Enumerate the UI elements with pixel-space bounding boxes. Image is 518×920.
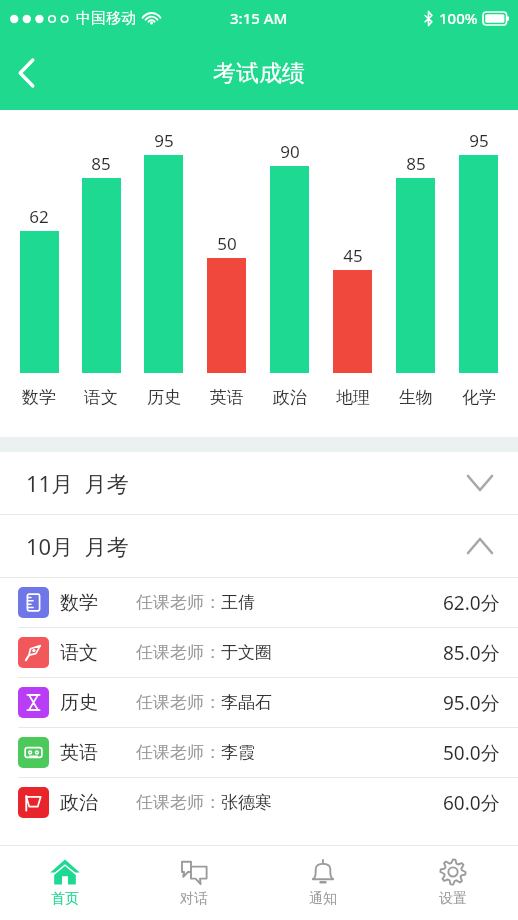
button[interactable]: 数学 (0, 578, 518, 627)
staticText: 95.0分 (443, 690, 500, 716)
staticText: 首页 (51, 890, 79, 908)
staticText: 95 (469, 129, 489, 152)
staticText: 95 (154, 129, 174, 152)
button[interactable]: 语文 (0, 628, 518, 677)
staticText: 数学 (60, 591, 98, 615)
staticText: 任课老师： (136, 592, 221, 613)
staticText: 英语 (60, 741, 98, 765)
button[interactable]: Back (0, 47, 52, 99)
staticText: 62 (29, 205, 49, 228)
staticText: 王倩 (221, 592, 255, 613)
staticText: 数学 (22, 387, 56, 408)
button[interactable]: 政治 (0, 778, 518, 827)
staticText: 任课老师： (136, 642, 221, 663)
staticText: 政治 (60, 791, 98, 815)
staticText: 45 (343, 244, 363, 267)
staticText: 100% (439, 8, 478, 28)
button[interactable]: 首页 (0, 845, 129, 920)
button[interactable]: 英语 (0, 728, 518, 777)
staticText: 化学 (462, 387, 496, 408)
button[interactable]: 通知 (258, 845, 388, 920)
staticText: 85.0分 (443, 640, 500, 666)
staticText: 设置 (439, 890, 467, 908)
staticText: 85 (406, 152, 426, 175)
staticText: 60.0分 (443, 790, 500, 816)
staticText: 李霞 (221, 742, 255, 763)
staticText: 11月 月考 (26, 468, 129, 498)
staticText: 李晶石 (221, 692, 272, 713)
button[interactable]: 11月 月考 (0, 452, 518, 514)
button[interactable]: 历史 (0, 678, 518, 727)
staticText: 考试成绩 (213, 59, 305, 88)
staticText: 对话 (180, 890, 208, 908)
staticText: 历史 (147, 387, 181, 408)
staticText: 通知 (309, 890, 337, 908)
staticText: 90 (280, 140, 300, 163)
staticText: 历史 (60, 691, 98, 715)
staticText: 政治 (273, 387, 307, 408)
staticText: 85 (91, 152, 111, 175)
staticText: 张德寒 (221, 792, 272, 813)
staticText: 地理 (336, 387, 370, 408)
staticText: 英语 (210, 387, 244, 408)
staticText: 任课老师： (136, 792, 221, 813)
button[interactable]: 设置 (388, 845, 518, 920)
staticText: 语文 (84, 387, 118, 408)
staticText: 中国移动 (76, 9, 136, 28)
staticText: 10月 月考 (26, 531, 129, 561)
staticText: 生物 (399, 387, 433, 408)
button[interactable]: 对话 (129, 845, 258, 920)
staticText: 62.0分 (443, 590, 500, 616)
staticText: 语文 (60, 641, 98, 665)
staticText: 任课老师： (136, 742, 221, 763)
button[interactable]: 10月 月考 (0, 515, 518, 577)
staticText: 任课老师： (136, 692, 221, 713)
staticText: 50 (217, 232, 237, 255)
staticText: 3:15 AM (230, 8, 288, 28)
staticText: 50.0分 (443, 740, 500, 766)
staticText: 于文圈 (221, 642, 272, 663)
